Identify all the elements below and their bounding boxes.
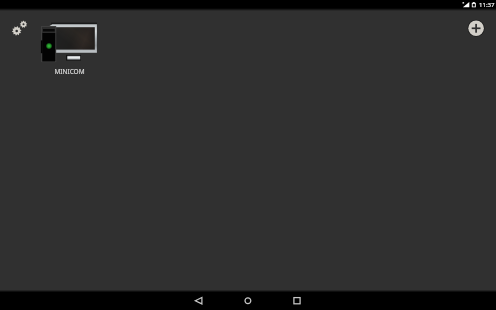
button[interactable]: Add connection (467, 19, 486, 38)
button[interactable]: MINICOM (36, 20, 104, 78)
staticText: MINICOM (36, 67, 103, 76)
button[interactable]: Settings (6, 19, 30, 43)
staticText: 11:37 (479, 0, 495, 8)
button[interactable]: Back (175, 288, 224, 310)
button[interactable]: Recent apps (273, 288, 322, 310)
button[interactable]: Home (224, 288, 273, 310)
